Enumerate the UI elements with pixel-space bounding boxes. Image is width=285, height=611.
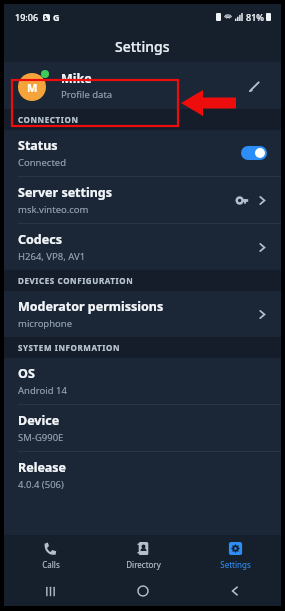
staticText: Status (18, 137, 58, 154)
staticText: CONNECTION (18, 114, 79, 125)
staticText: H264, VP8, AV1 (18, 250, 86, 263)
staticText: Moderator permissions (18, 298, 164, 315)
button[interactable]: OS (4, 358, 281, 404)
button[interactable]: Moderator permissions (4, 291, 281, 337)
button[interactable]: Settings (189, 535, 281, 576)
button[interactable]: Release (4, 452, 281, 498)
staticText: microphone (18, 317, 73, 330)
button[interactable]: M (4, 62, 281, 109)
button[interactable]: Back (189, 576, 281, 606)
staticText: Settings (115, 37, 170, 56)
staticText: 81% (246, 11, 264, 23)
button[interactable]: Edit profile (241, 73, 267, 99)
staticText: M (27, 80, 38, 95)
staticText: 19:06 (15, 11, 39, 23)
button[interactable]: Home (97, 576, 189, 606)
button[interactable]: Device (4, 405, 281, 451)
staticText: msk.vinteo.com (18, 203, 89, 216)
staticText: DEVICES CONFIGURATION (18, 275, 134, 286)
staticText: Connected (18, 156, 67, 169)
staticText: Mike (61, 70, 92, 87)
staticText: G (53, 11, 60, 23)
staticText: Directory (126, 559, 161, 570)
staticText: SM-G990E (18, 431, 64, 444)
staticText: Calls (42, 559, 60, 570)
staticText: Device (18, 412, 60, 429)
button[interactable]: Codecs (4, 224, 281, 270)
staticText: Settings (220, 559, 251, 570)
staticText: Android 14 (18, 384, 67, 397)
staticText: 4.0.4 (506) (18, 478, 64, 491)
button[interactable]: Directory (97, 535, 189, 576)
button[interactable]: Recents (4, 576, 97, 606)
staticText: SYSTEM INFORMATION (18, 342, 121, 353)
staticText: Server settings (18, 184, 113, 201)
button[interactable]: Calls (4, 535, 97, 576)
button[interactable]: Server settings (4, 177, 281, 223)
staticText: Release (18, 459, 67, 476)
staticText: OS (18, 365, 35, 382)
button[interactable]: Status (4, 130, 281, 176)
staticText: Codecs (18, 231, 62, 248)
button[interactable]: Status toggle (241, 146, 267, 160)
staticText: Profile data (61, 88, 113, 101)
